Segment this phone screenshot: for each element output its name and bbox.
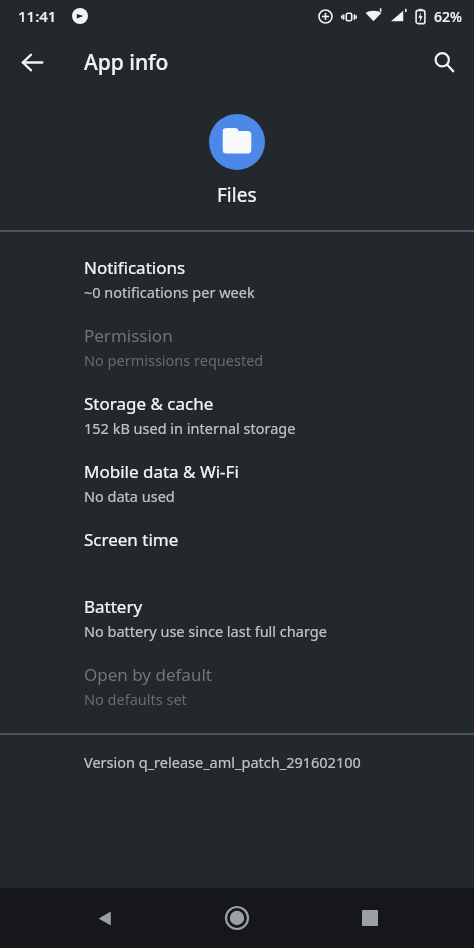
button[interactable]: Permission bbox=[0, 313, 474, 381]
staticText: Files bbox=[217, 182, 257, 208]
button[interactable]: Battery bbox=[0, 584, 474, 652]
button[interactable]: Home bbox=[209, 890, 265, 946]
button[interactable]: Mobile data & Wi-Fi bbox=[0, 449, 474, 517]
button[interactable]: Back bbox=[10, 40, 54, 84]
staticText: No data used bbox=[84, 486, 175, 506]
staticText: ~0 notifications per week bbox=[84, 282, 255, 302]
staticText: 62% bbox=[434, 7, 462, 26]
button[interactable]: Search bbox=[422, 40, 466, 84]
staticText: No permissions requested bbox=[84, 350, 264, 370]
button[interactable]: Back bbox=[77, 890, 133, 946]
button[interactable]: Storage & cache bbox=[0, 381, 474, 449]
staticText: Battery bbox=[84, 595, 143, 618]
staticText: No defaults set bbox=[84, 689, 187, 709]
staticText: Permission bbox=[84, 324, 173, 347]
button[interactable]: Notifications bbox=[0, 245, 474, 313]
staticText: App info bbox=[84, 48, 169, 77]
staticText: Open by default bbox=[84, 663, 212, 686]
staticText: No battery use since last full charge bbox=[84, 621, 327, 641]
button[interactable]: Open by default bbox=[0, 652, 474, 720]
staticText: Version q_release_aml_patch_291602100 bbox=[84, 752, 361, 772]
button[interactable]: Screen time bbox=[0, 517, 474, 584]
staticText: Mobile data & Wi-Fi bbox=[84, 460, 239, 483]
staticText: 152 kB used in internal storage bbox=[84, 418, 296, 438]
staticText: Screen time bbox=[84, 528, 179, 551]
button[interactable]: Recent apps bbox=[342, 890, 398, 946]
staticText: Storage & cache bbox=[84, 392, 214, 415]
staticText: 11:41 bbox=[18, 6, 57, 26]
staticText: Notifications bbox=[84, 256, 186, 279]
